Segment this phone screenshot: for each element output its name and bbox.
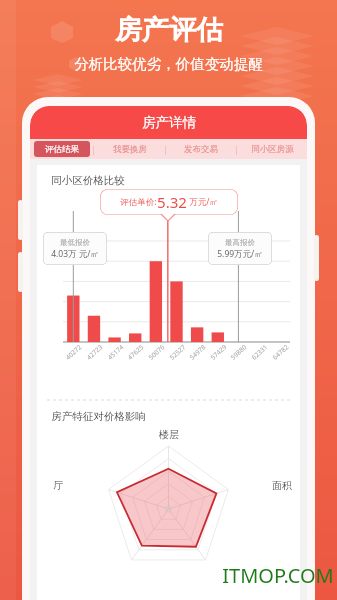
button[interactable]: 我要换房	[97, 140, 162, 158]
staticText: 40272	[63, 342, 83, 362]
staticText: 房产详情	[142, 114, 196, 131]
staticText: 评估结果	[45, 144, 79, 155]
staticText: 5.32	[157, 192, 187, 212]
staticText: 万元/㎡	[189, 196, 218, 208]
staticText: |	[234, 144, 239, 155]
staticText: |	[163, 144, 168, 155]
staticText: 50076	[146, 342, 166, 362]
staticText: 我要换房	[113, 144, 147, 155]
staticText: 房产评估	[115, 13, 223, 47]
staticText: 54978	[187, 342, 207, 362]
button[interactable]: 评估结果	[34, 141, 90, 157]
staticText: 同小区房源	[251, 144, 294, 155]
staticText: 评估单价:	[120, 196, 157, 208]
staticText: 45174	[105, 342, 125, 362]
staticText: 4.03万 元/㎡	[51, 248, 99, 260]
staticText: 面积	[272, 479, 292, 492]
staticText: 57429	[208, 342, 228, 362]
staticText: 64782	[270, 342, 290, 362]
staticText: 52527	[167, 342, 187, 362]
staticText: 42723	[84, 342, 104, 362]
button[interactable]: 发布交易	[169, 140, 233, 158]
staticText: |	[91, 144, 96, 155]
staticText: 5.99万元/㎡	[217, 248, 263, 260]
staticText: 同小区价格比较	[51, 174, 125, 187]
button[interactable]: 同小区房源	[240, 140, 304, 158]
staticText: 厅	[53, 479, 63, 492]
staticText: 分析比较优劣，价值变动提醒	[74, 55, 263, 73]
staticText: 最高报价	[225, 238, 255, 247]
staticText: 最低报价	[60, 238, 90, 247]
staticText: 59880	[228, 342, 248, 362]
staticText: 房产特征对价格影响	[51, 410, 146, 423]
staticText: 发布交易	[184, 144, 218, 155]
staticText: 47625	[125, 342, 145, 362]
staticText: 楼层	[159, 428, 179, 441]
staticText: ITMOP.COM	[222, 562, 334, 589]
staticText: 62331	[249, 342, 269, 362]
